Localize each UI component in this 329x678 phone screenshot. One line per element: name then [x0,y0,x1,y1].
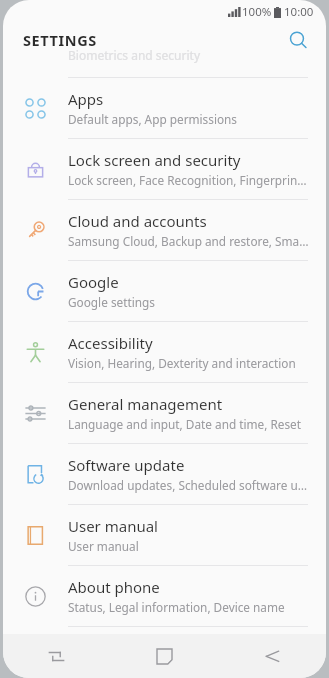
button[interactable]: Back [218,634,326,678]
staticText: Samsung Cloud, Backup and restore, Smart… [68,233,310,249]
staticText: Default apps, App permissions [68,111,238,127]
button[interactable]: Search [280,24,316,56]
staticText: General management [68,394,223,414]
staticText: Biometrics and security [68,47,201,63]
button[interactable]: Home [110,634,218,678]
staticText: Status, Legal information, Device name [68,599,285,615]
button[interactable]: About phone [3,566,326,626]
button[interactable]: Lock screen and security [3,139,326,199]
button[interactable]: Recents [3,634,110,678]
staticText: Cloud and accounts [68,211,207,231]
button[interactable]: Software update [3,444,326,504]
staticText: 100% [242,4,272,20]
button[interactable]: Apps [3,78,326,138]
staticText: Download updates, Scheduled software up… [68,477,310,493]
button[interactable]: Accessibility [3,322,326,382]
staticText: Vision, Hearing, Dexterity and interacti… [68,355,296,371]
button[interactable]: Google [3,261,326,321]
staticText: User manual [68,538,139,554]
staticText: Apps [68,89,104,109]
staticText: 10:00 [284,4,314,20]
staticText: User manual [68,516,158,536]
button[interactable]: Cloud and accounts [3,200,326,260]
staticText: Lock screen, Face Recognition, Fingerpri… [68,172,310,188]
staticText: Lock screen and security [68,150,241,170]
staticText: Google [68,272,119,292]
staticText: Software update [68,455,185,475]
button[interactable]: General management [3,383,326,443]
staticText: Accessibility [68,333,153,353]
staticText: Google settings [68,294,155,310]
staticText: SETTINGS [23,30,97,50]
staticText: Language and input, Date and time, Reset [68,416,302,432]
staticText: About phone [68,577,160,597]
button[interactable]: User manual [3,505,326,565]
button[interactable]: Biometrics and security [3,56,326,78]
